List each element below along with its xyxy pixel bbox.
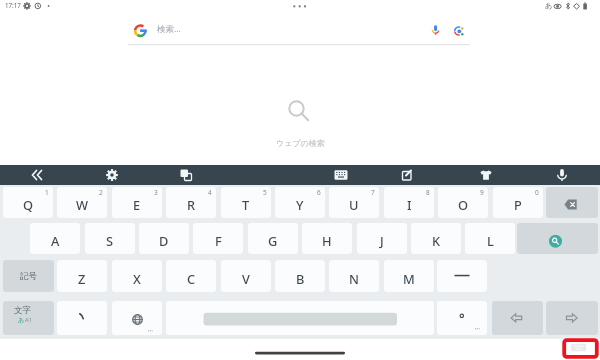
staticText: J [380, 232, 384, 249]
button[interactable]: B [275, 260, 325, 292]
button[interactable]: W [57, 187, 107, 218]
staticText: 6 [317, 188, 321, 197]
button[interactable] [437, 301, 487, 335]
staticText: P [514, 196, 522, 213]
button[interactable]: J [357, 223, 407, 254]
button[interactable]: O [438, 187, 488, 218]
button[interactable]: V [221, 260, 271, 292]
button[interactable]: E [112, 187, 162, 218]
staticText: H [322, 232, 332, 249]
staticText: T [242, 196, 250, 213]
staticText: 記号 [20, 271, 37, 282]
staticText: 7 [371, 188, 375, 197]
staticText: E [133, 196, 141, 213]
staticText: Q [23, 196, 34, 213]
button[interactable]: M [384, 260, 434, 292]
button[interactable] [492, 301, 543, 335]
staticText: B [296, 270, 305, 287]
button[interactable]: X [112, 260, 162, 292]
button[interactable]: C [166, 260, 216, 292]
staticText: A1 [25, 316, 33, 324]
staticText: N [349, 270, 359, 287]
staticText: 文字 [14, 305, 31, 316]
staticText: L [487, 232, 494, 249]
staticText: 5 [263, 188, 267, 197]
button[interactable]: Z [57, 260, 107, 292]
staticText: あ [18, 316, 25, 324]
button[interactable] [542, 165, 582, 185]
staticText: Y [296, 196, 304, 213]
button[interactable]: T [221, 187, 271, 218]
staticText: D [159, 232, 169, 249]
staticText: G [268, 232, 278, 249]
button[interactable]: Y [275, 187, 325, 218]
button[interactable]: U [329, 187, 379, 218]
button[interactable]: Q [3, 187, 53, 218]
button[interactable] [57, 301, 107, 335]
button[interactable] [92, 165, 132, 185]
button[interactable] [546, 187, 598, 218]
staticText: W [76, 196, 89, 213]
staticText: C [187, 270, 196, 287]
staticText: V [242, 270, 250, 287]
button[interactable] [546, 301, 598, 335]
button[interactable]: N [329, 260, 379, 292]
button[interactable] [3, 301, 54, 335]
button[interactable]: I [384, 187, 434, 218]
staticText: 17:17 [5, 1, 21, 9]
staticText: S [106, 232, 114, 249]
staticText: 2 [99, 188, 103, 197]
button[interactable]: S [85, 223, 135, 254]
button[interactable] [321, 165, 361, 185]
button[interactable]: D [139, 223, 189, 254]
staticText: M [403, 270, 415, 287]
staticText: 1 [45, 188, 49, 197]
button[interactable] [166, 165, 206, 185]
staticText: O [458, 196, 469, 213]
staticText: R [187, 196, 196, 213]
button[interactable]: F [193, 223, 243, 254]
button[interactable]: A [30, 223, 80, 254]
button[interactable]: K [411, 223, 461, 254]
staticText: I [407, 196, 412, 213]
button[interactable] [563, 339, 597, 357]
staticText: 8 [426, 188, 430, 197]
staticText: F [215, 232, 222, 249]
staticText: U [349, 196, 359, 213]
button[interactable]: 検索... [128, 16, 470, 46]
button[interactable]: R [166, 187, 216, 218]
staticText: K [432, 232, 441, 249]
button[interactable] [17, 165, 57, 185]
staticText: あ [545, 1, 553, 10]
staticText: 9 [480, 188, 484, 197]
button[interactable]: G [248, 223, 298, 254]
button[interactable]: H [302, 223, 352, 254]
button[interactable]: 記号 [3, 260, 54, 292]
button[interactable] [255, 349, 345, 357]
staticText: 4 [208, 188, 212, 197]
staticText: 3 [154, 188, 158, 197]
staticText: 検索... [157, 23, 181, 35]
button[interactable]: P [493, 187, 543, 218]
button[interactable] [166, 301, 434, 335]
staticText: Z [78, 270, 86, 287]
button[interactable] [388, 165, 428, 185]
staticText: X [133, 270, 141, 287]
button[interactable] [112, 301, 162, 335]
button[interactable] [517, 223, 598, 254]
button[interactable]: L [465, 223, 515, 254]
button[interactable] [437, 260, 487, 292]
staticText: A [51, 232, 60, 249]
staticText: ウェブの検索 [276, 138, 325, 148]
staticText: 0 [535, 188, 539, 197]
button[interactable] [466, 165, 506, 185]
